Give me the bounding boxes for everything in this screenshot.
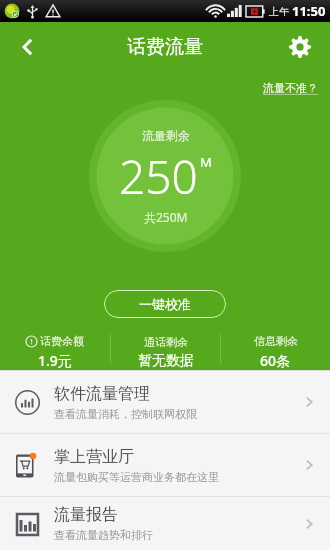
staticText: 流量报告	[54, 505, 118, 525]
button[interactable]: 一键校准	[104, 290, 226, 318]
button[interactable]: 软件流量管理	[0, 371, 330, 433]
staticText: 信息剩余	[254, 334, 298, 348]
staticText: M	[200, 153, 212, 171]
staticText: 话费流量	[127, 35, 203, 59]
staticText: 暂无数据	[138, 352, 194, 370]
staticText: 通话剩余	[144, 335, 188, 349]
button[interactable]: 流量报告	[0, 497, 330, 550]
staticText: 话费余额	[40, 334, 84, 348]
staticText: 流量不准？	[263, 81, 318, 95]
staticText: 查看流量趋势和排行	[54, 528, 153, 542]
button[interactable]: Back	[8, 27, 48, 67]
button[interactable]: 通话剩余	[111, 334, 220, 370]
staticText: 软件流量管理	[54, 384, 150, 404]
staticText: 1.9元	[38, 351, 72, 370]
staticText: 60条	[260, 351, 291, 370]
button[interactable]: Settings	[280, 27, 320, 67]
staticText: 250	[119, 145, 198, 208]
staticText: 查看流量消耗，控制联网权限	[54, 407, 197, 421]
staticText: 共250M	[144, 209, 188, 225]
button[interactable]: 掌上营业厅	[0, 434, 330, 496]
button[interactable]: 话费余额	[0, 334, 110, 370]
staticText: 掌上营业厅	[54, 447, 134, 467]
button[interactable]: 流量不准？	[261, 79, 320, 97]
staticText: 一键校准	[139, 296, 191, 312]
button[interactable]: 信息剩余	[221, 334, 330, 370]
staticText: 上午	[269, 5, 289, 18]
staticText: 流量剩余	[142, 128, 190, 143]
staticText: 11:50	[292, 2, 326, 20]
staticText: 流量包购买等运营商业务都在这里	[54, 470, 219, 484]
